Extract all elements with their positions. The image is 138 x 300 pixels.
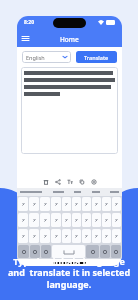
button[interactable] xyxy=(40,197,50,211)
button[interactable] xyxy=(51,229,61,243)
button[interactable]: Delete xyxy=(40,176,52,188)
button[interactable] xyxy=(29,197,39,211)
button[interactable] xyxy=(21,67,118,154)
button[interactable] xyxy=(40,213,50,227)
button[interactable]: Menu xyxy=(20,33,31,44)
staticText: English xyxy=(26,54,45,61)
button[interactable] xyxy=(62,229,71,243)
button[interactable]: Share xyxy=(52,176,64,188)
button[interactable] xyxy=(102,213,111,227)
button[interactable] xyxy=(51,213,61,227)
button[interactable] xyxy=(72,213,81,227)
button[interactable] xyxy=(112,229,121,243)
button[interactable] xyxy=(92,213,101,227)
button[interactable]: Text size xyxy=(64,176,76,188)
button[interactable] xyxy=(18,229,28,243)
button[interactable]: Settings xyxy=(88,176,100,188)
button[interactable]: Backspace xyxy=(100,245,110,258)
staticText: Home xyxy=(60,35,79,44)
button[interactable] xyxy=(62,213,71,227)
button[interactable] xyxy=(72,197,81,211)
button[interactable]: Enter xyxy=(86,245,99,258)
button[interactable] xyxy=(29,229,39,243)
button[interactable] xyxy=(92,229,101,243)
staticText: 8:20 xyxy=(24,19,34,26)
button[interactable] xyxy=(18,213,28,227)
button[interactable] xyxy=(62,197,71,211)
button[interactable] xyxy=(112,213,121,227)
button[interactable] xyxy=(82,197,91,211)
button[interactable] xyxy=(40,229,50,243)
button[interactable]: Translate xyxy=(76,51,117,63)
button[interactable]: Copy xyxy=(76,176,88,188)
button[interactable]: English xyxy=(22,51,71,63)
button[interactable]: Shift xyxy=(30,245,40,258)
button[interactable] xyxy=(92,197,101,211)
button[interactable] xyxy=(112,197,121,211)
button[interactable] xyxy=(72,229,81,243)
button[interactable] xyxy=(82,229,91,243)
button[interactable] xyxy=(102,229,111,243)
button[interactable] xyxy=(51,197,61,211)
button[interactable] xyxy=(18,197,28,211)
staticText: Type in Sinhala language and translate i… xyxy=(0,255,138,291)
button[interactable]: Keyboard settings xyxy=(111,245,121,258)
button[interactable]: Symbols xyxy=(18,245,29,258)
button[interactable]: Emoji xyxy=(41,245,51,258)
button[interactable] xyxy=(82,213,91,227)
button[interactable] xyxy=(29,213,39,227)
button[interactable] xyxy=(102,197,111,211)
button[interactable]: Space xyxy=(52,245,85,258)
staticText: Translate xyxy=(84,54,109,61)
